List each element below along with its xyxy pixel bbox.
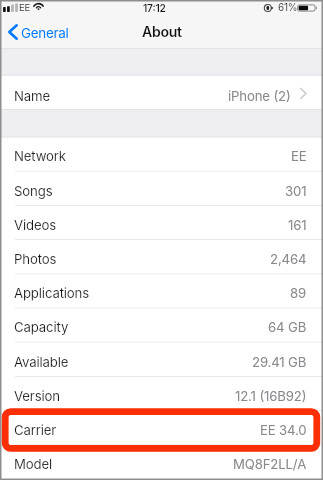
staticText: Name <box>14 88 50 104</box>
staticText: 29.41 GB <box>252 354 307 370</box>
button[interactable]: Version <box>0 377 323 410</box>
other: Wi-Fi <box>33 2 44 10</box>
staticText: 61% <box>278 1 298 13</box>
button[interactable]: General <box>8 19 69 48</box>
button[interactable]: Capacity <box>0 308 323 341</box>
staticText: Applications <box>14 285 90 301</box>
button[interactable]: Model <box>0 445 323 478</box>
staticText: EE 34.0 <box>260 422 307 438</box>
button[interactable]: Name <box>0 76 323 111</box>
staticText: 12.1 (16B92) <box>235 388 307 404</box>
button[interactable]: Available <box>0 343 323 376</box>
staticText: Available <box>14 354 69 370</box>
other: Alarm <box>264 4 273 12</box>
staticText: Songs <box>14 183 53 199</box>
button[interactable]: Applications <box>0 274 323 307</box>
staticText: Capacity <box>14 319 69 335</box>
staticText: EE <box>19 2 30 14</box>
staticText: Version <box>14 388 60 404</box>
staticText: MQ8F2LL/A <box>233 456 307 472</box>
button[interactable]: Network <box>0 137 323 170</box>
staticText: 301 <box>285 183 307 199</box>
staticText: 64 GB <box>268 319 307 335</box>
staticText: 89 <box>290 285 307 301</box>
button[interactable]: Songs <box>0 172 323 205</box>
staticText: Carrier <box>14 422 57 438</box>
other: Battery 61 percent <box>297 4 317 12</box>
staticText: Network <box>14 148 66 164</box>
button[interactable]: Photos <box>0 240 323 273</box>
staticText: Videos <box>14 217 57 233</box>
staticText: iPhone (2) <box>228 88 291 104</box>
button[interactable]: Videos <box>0 206 323 239</box>
staticText: EE <box>291 148 307 164</box>
staticText: 17:12 <box>143 2 166 14</box>
button[interactable]: Carrier <box>0 411 323 444</box>
staticText: 161 <box>288 217 307 233</box>
staticText: Model <box>14 456 53 472</box>
staticText: Photos <box>14 251 57 267</box>
staticText: General <box>21 25 69 41</box>
staticText: 2,464 <box>270 251 307 267</box>
staticText: About <box>142 23 182 40</box>
